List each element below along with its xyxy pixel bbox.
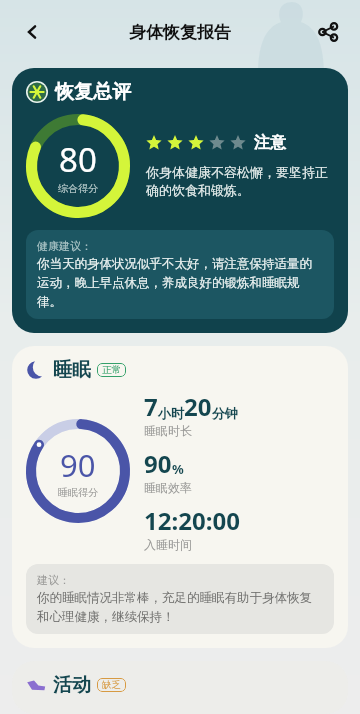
staticText: 综合得分 xyxy=(58,182,98,195)
staticText: 睡眠得分 xyxy=(58,486,98,499)
staticText: 你身体健康不容松懈，要坚持正确的饮食和锻炼。 xyxy=(146,164,334,199)
staticText: 睡眠 xyxy=(53,358,91,382)
button[interactable]: 活动 xyxy=(12,661,348,714)
staticText: 你的睡眠情况非常棒，充足的睡眠有助于身体恢复和心理健康，继续保持！ xyxy=(37,590,323,625)
staticText: 90 xyxy=(60,444,96,486)
staticText: 80 xyxy=(59,137,97,182)
staticText: 分钟 xyxy=(212,405,238,421)
button[interactable]: 恢复总评 xyxy=(12,68,348,333)
staticText: 90 xyxy=(144,447,172,480)
staticText: 活动 xyxy=(53,673,91,697)
staticText: % xyxy=(172,460,184,478)
staticText: 你当天的身体状况似乎不太好，请注意保持适量的运动，晚上早点休息，养成良好的锻炼和… xyxy=(37,256,323,310)
staticText: 恢复总评 xyxy=(55,80,131,104)
staticText: 正常 xyxy=(102,364,121,376)
staticText: 小时 xyxy=(158,405,184,421)
button[interactable]: Back xyxy=(10,10,54,54)
staticText: 睡眠效率 xyxy=(144,480,192,495)
staticText: 12:20:00 xyxy=(144,504,240,537)
staticText: 入睡时间 xyxy=(144,537,192,552)
staticText: 20 xyxy=(184,390,212,423)
staticText: 7 xyxy=(144,390,158,423)
staticText: 缺乏 xyxy=(102,679,121,691)
staticText: 睡眠时长 xyxy=(144,423,192,438)
staticText: 建议： xyxy=(37,573,70,587)
staticText: 身体恢复报告 xyxy=(129,22,231,43)
staticText: 注意 xyxy=(254,133,286,153)
button[interactable]: 睡眠 xyxy=(12,346,348,648)
button[interactable]: Share xyxy=(306,10,350,54)
staticText: 健康建议： xyxy=(37,239,92,253)
